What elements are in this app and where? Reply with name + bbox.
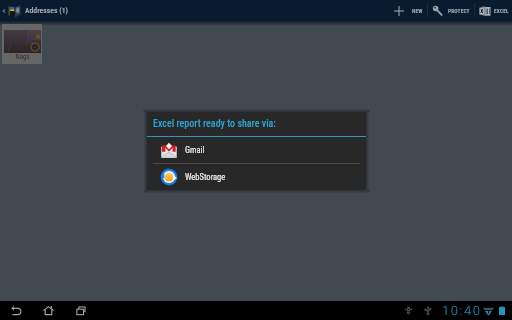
staticText: WebStorage bbox=[185, 172, 226, 182]
button[interactable]: Nags bbox=[2, 24, 42, 64]
staticText: PROTECT bbox=[448, 8, 470, 14]
button[interactable]: PROTECT bbox=[428, 0, 474, 21]
button[interactable]: WebStorage bbox=[147, 164, 366, 190]
staticText: Addresses (1) bbox=[25, 6, 68, 15]
button[interactable]: Home bbox=[41, 301, 55, 320]
staticText: EXCEL bbox=[494, 8, 509, 14]
staticText: 10:40 bbox=[442, 303, 482, 318]
button[interactable]: Recent apps bbox=[74, 301, 88, 320]
staticText: NEW bbox=[412, 8, 423, 14]
button[interactable]: Back bbox=[9, 301, 23, 320]
staticText: Excel report ready to share via: bbox=[153, 118, 276, 130]
staticText: Gmail bbox=[185, 145, 205, 155]
staticText: Nags bbox=[15, 53, 30, 61]
button[interactable]: EXCEL bbox=[475, 0, 512, 21]
button[interactable]: NEW bbox=[390, 0, 427, 21]
button[interactable]: Addresses (1) bbox=[0, 0, 68, 21]
button[interactable]: Gmail bbox=[147, 137, 366, 163]
